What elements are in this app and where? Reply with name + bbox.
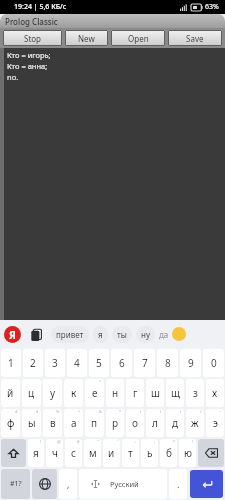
button[interactable]: * — [106, 409, 124, 437]
button[interactable]: 0 — [203, 349, 224, 377]
staticText: . — [177, 478, 180, 490]
button[interactable]: Change language — [32, 469, 57, 499]
staticText: ч — [52, 446, 58, 460]
staticText: Кто = анна; — [7, 61, 48, 71]
button[interactable]: Русский — [79, 469, 167, 499]
button[interactable]: й — [1, 379, 20, 407]
button[interactable]: New — [65, 30, 108, 46]
staticText: я — [98, 329, 103, 340]
button[interactable]: # — [1, 409, 20, 437]
button[interactable]: $ — [22, 409, 41, 437]
staticText: / — [200, 409, 202, 414]
button[interactable]: 8 — [157, 349, 178, 377]
staticText: к — [71, 386, 77, 400]
button[interactable]: я — [93, 326, 108, 343]
button[interactable]: , — [59, 469, 77, 499]
button[interactable]: Yandex — [4, 326, 21, 343]
staticText: 6 — [119, 356, 125, 370]
staticText: да — [159, 329, 169, 340]
staticText: $ — [36, 409, 39, 414]
button[interactable]: у — [43, 379, 62, 407]
staticText: ^ — [78, 409, 81, 414]
button[interactable]: привет — [51, 326, 89, 343]
staticText: ; — [154, 439, 156, 444]
staticText: й — [7, 386, 14, 400]
button[interactable]: # — [65, 439, 82, 467]
button[interactable]: ^ — [64, 409, 83, 437]
button[interactable]: ( — [166, 409, 184, 437]
staticText: ш — [151, 386, 160, 400]
staticText: @ — [57, 439, 61, 444]
button[interactable]: Open — [111, 30, 165, 46]
button[interactable]: ' — [103, 439, 120, 467]
button[interactable]: 1 — [1, 349, 21, 377]
button[interactable]: 9 — [180, 349, 201, 377]
staticText: ' — [117, 439, 118, 444]
button[interactable]: * — [85, 379, 104, 407]
button[interactable]: 5 — [89, 349, 109, 377]
staticText: * — [119, 409, 122, 414]
button[interactable]: Backspace — [198, 439, 224, 467]
staticText: з — [193, 386, 198, 400]
button[interactable]: " — [84, 439, 101, 467]
staticText: ! — [40, 439, 42, 444]
button[interactable]: Stop — [3, 30, 62, 46]
staticText: no. — [7, 72, 19, 82]
staticText: ? — [173, 439, 175, 444]
button[interactable]: Save — [168, 30, 222, 46]
button[interactable]: щ — [166, 379, 184, 407]
button[interactable]: 7 — [134, 349, 155, 377]
button[interactable]: 6 — [111, 349, 132, 377]
button[interactable]: Shift — [1, 439, 26, 467]
button[interactable]: . — [169, 469, 187, 499]
button[interactable]: #1? — [1, 469, 30, 499]
staticText: л — [152, 416, 158, 430]
button[interactable]: & — [85, 409, 104, 437]
button[interactable]: ; — [141, 439, 158, 467]
staticText: Русский — [110, 479, 139, 489]
staticText: г — [133, 386, 138, 400]
staticText: Я — [9, 328, 16, 342]
button[interactable]: 3 — [45, 349, 65, 377]
button[interactable]: : — [122, 439, 139, 467]
staticText: * — [99, 379, 102, 384]
staticText: у — [50, 386, 56, 400]
staticText: щ — [171, 386, 180, 400]
button[interactable]: ! — [28, 439, 44, 467]
staticText: Кто = игорь; — [7, 50, 51, 60]
staticText: х — [212, 386, 218, 400]
button[interactable]: ) — [146, 409, 164, 437]
staticText: я — [33, 446, 39, 460]
staticText: New — [78, 33, 95, 44]
button[interactable]: ? — [160, 439, 177, 467]
button[interactable]: ~ — [206, 409, 224, 437]
staticText: ф — [7, 416, 15, 430]
button[interactable]: ! — [179, 439, 196, 467]
button[interactable]: з — [186, 379, 204, 407]
button[interactable]: х — [206, 379, 224, 407]
button[interactable]: ш — [146, 379, 164, 407]
staticText: ю — [184, 446, 192, 460]
staticText: привет — [56, 329, 84, 340]
staticText: , — [67, 478, 70, 490]
button[interactable]: н — [106, 379, 124, 407]
button[interactable]: ц — [22, 379, 41, 407]
button[interactable]: 4 — [67, 349, 87, 377]
button[interactable]: % — [43, 409, 62, 437]
button[interactable]: Clipboard — [28, 326, 44, 342]
staticText: ) — [160, 409, 162, 414]
button[interactable]: / — [186, 409, 204, 437]
button[interactable]: ты — [112, 326, 132, 343]
button[interactable]: ну — [136, 326, 155, 343]
staticText: 5 — [96, 356, 102, 370]
staticText: в — [50, 416, 56, 430]
staticText: ну — [141, 329, 150, 340]
button[interactable]: 2 — [23, 349, 43, 377]
button[interactable]: Enter — [190, 470, 223, 498]
button[interactable]: г — [126, 379, 144, 407]
button[interactable]: @ — [46, 439, 63, 467]
button[interactable]: ( — [126, 409, 144, 437]
button[interactable]: Emoji — [172, 327, 186, 341]
button[interactable]: к — [64, 379, 83, 407]
staticText: ж — [191, 416, 199, 430]
